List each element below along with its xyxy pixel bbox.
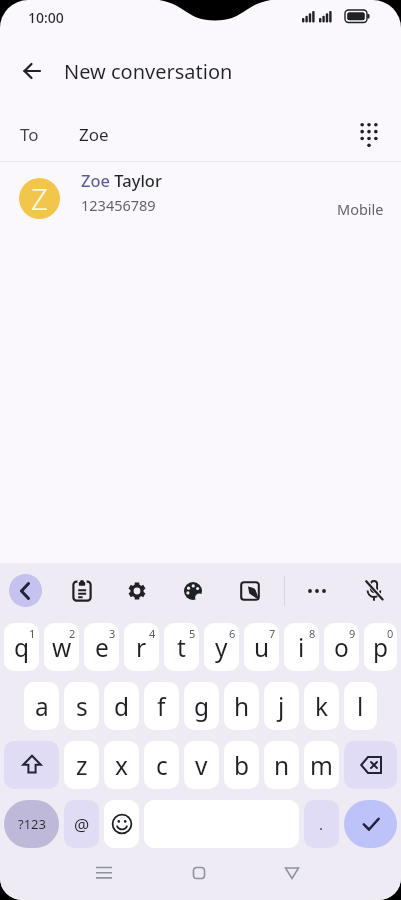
button[interactable]: y xyxy=(204,623,239,671)
staticText: @ xyxy=(74,813,90,836)
button[interactable] xyxy=(9,574,42,607)
staticText: ?123 xyxy=(18,815,46,833)
button[interactable]: o xyxy=(324,623,359,671)
button[interactable] xyxy=(272,853,312,893)
staticText: 123456789 xyxy=(81,195,156,215)
staticText: e xyxy=(95,631,109,664)
staticText: 10:00 xyxy=(28,8,64,27)
staticText: 4 xyxy=(149,626,156,641)
staticText: d xyxy=(114,690,130,723)
staticText: 8 xyxy=(309,626,316,641)
staticText: o xyxy=(334,631,349,664)
button[interactable]: j xyxy=(264,682,299,730)
staticText: z xyxy=(76,749,88,782)
button[interactable]: u xyxy=(244,623,279,671)
staticText: w xyxy=(52,631,72,664)
button[interactable]: r xyxy=(124,623,159,671)
button[interactable]: l xyxy=(344,682,377,730)
button[interactable] xyxy=(4,741,59,789)
button[interactable]: ?123 xyxy=(4,800,59,848)
staticText: y xyxy=(215,631,228,664)
button[interactable]: c xyxy=(144,741,179,789)
button[interactable] xyxy=(117,571,157,611)
button[interactable]: To xyxy=(0,108,401,161)
staticText: 0 xyxy=(387,626,394,641)
button[interactable]: s xyxy=(64,682,99,730)
staticText: m xyxy=(310,749,333,782)
button[interactable]: d xyxy=(104,682,139,730)
staticText: x xyxy=(115,749,128,782)
button[interactable]: w xyxy=(44,623,79,671)
staticText: c xyxy=(156,749,168,782)
staticText: r xyxy=(136,631,147,664)
button[interactable]: q xyxy=(4,623,39,671)
button[interactable] xyxy=(62,571,102,611)
staticText: v xyxy=(195,749,208,782)
staticText: 5 xyxy=(189,626,196,641)
staticText: Zoe Taylor xyxy=(81,169,162,191)
button[interactable]: h xyxy=(224,682,259,730)
staticText: To xyxy=(20,123,39,146)
button[interactable]: k xyxy=(304,682,339,730)
button[interactable]: i xyxy=(284,623,319,671)
button[interactable]: Z xyxy=(0,162,401,234)
button[interactable]: b xyxy=(224,741,259,789)
staticText: h xyxy=(234,690,250,723)
button[interactable]: f xyxy=(144,682,179,730)
button[interactable] xyxy=(230,571,270,611)
button[interactable] xyxy=(297,571,337,611)
staticText: g xyxy=(194,690,210,723)
staticText: t xyxy=(177,631,186,664)
staticText: Zoe xyxy=(79,123,109,146)
button[interactable]: p xyxy=(364,623,397,671)
staticText: 6 xyxy=(229,626,236,641)
staticText: . xyxy=(319,814,324,834)
staticText: l xyxy=(357,690,364,723)
staticText: i xyxy=(298,631,305,664)
staticText: Mobile xyxy=(337,199,384,219)
button[interactable]: @ xyxy=(64,800,99,848)
staticText: 7 xyxy=(269,626,276,641)
button[interactable]: n xyxy=(264,741,299,789)
button[interactable] xyxy=(347,113,391,157)
button[interactable]: g xyxy=(184,682,219,730)
button[interactable]: z xyxy=(64,741,99,789)
button[interactable]: v xyxy=(184,741,219,789)
staticText: q xyxy=(14,631,30,664)
staticText: k xyxy=(315,690,329,723)
button[interactable]: a xyxy=(24,682,59,730)
button[interactable]: e xyxy=(84,623,119,671)
staticText: Z xyxy=(31,179,48,218)
staticText: s xyxy=(76,690,88,723)
staticText: b xyxy=(234,749,250,782)
button[interactable] xyxy=(344,741,397,789)
staticText: f xyxy=(157,690,166,723)
staticText: New conversation xyxy=(64,58,233,85)
button[interactable] xyxy=(173,571,213,611)
button[interactable] xyxy=(344,800,397,848)
staticText: p xyxy=(373,631,389,664)
staticText: 1 xyxy=(29,626,36,641)
button[interactable]: . xyxy=(304,800,339,848)
staticText: n xyxy=(274,749,290,782)
staticText: j xyxy=(278,690,285,723)
button[interactable] xyxy=(104,800,139,848)
button[interactable]: m xyxy=(304,741,339,789)
button[interactable]: t xyxy=(164,623,199,671)
staticText: 2 xyxy=(69,626,76,641)
button[interactable] xyxy=(84,853,124,893)
button[interactable] xyxy=(354,571,394,611)
staticText: 9 xyxy=(349,626,356,641)
button[interactable] xyxy=(0,34,64,108)
staticText: a xyxy=(35,690,49,723)
button[interactable]: x xyxy=(104,741,139,789)
staticText: 3 xyxy=(109,626,116,641)
button[interactable] xyxy=(179,853,219,893)
staticText: u xyxy=(254,631,270,664)
